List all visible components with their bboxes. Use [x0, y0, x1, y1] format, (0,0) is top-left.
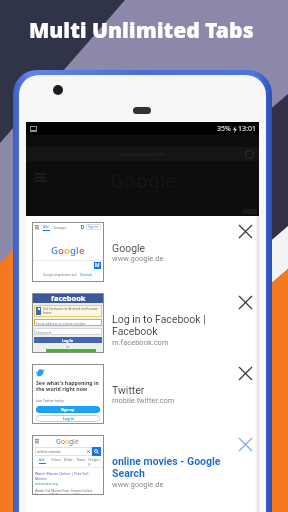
staticText: G [110, 168, 124, 194]
staticText: Sign up [61, 407, 75, 412]
staticText: Google [112, 242, 146, 254]
staticText: online movies - Google Search [112, 455, 221, 480]
button[interactable]: Close tab [232, 360, 258, 386]
button[interactable]: facebook [26, 293, 259, 364]
staticText: o [61, 437, 65, 446]
button[interactable]: Close tab [232, 289, 258, 315]
staticText: o [64, 244, 70, 257]
button[interactable]: G [26, 435, 259, 506]
staticText: Google angeboten auf: [43, 273, 78, 277]
staticText: Images [54, 225, 67, 230]
staticText: mobile.twitter.com [112, 396, 175, 405]
staticText: www.google.de [112, 480, 164, 489]
staticText: g [70, 244, 76, 257]
staticText: M [95, 262, 100, 269]
staticText: 13:01 [238, 124, 256, 134]
staticText: o [65, 437, 69, 446]
staticText: o [124, 168, 136, 194]
staticText: or [66, 344, 70, 349]
staticText: Alle [39, 458, 45, 462]
staticText: Log in [63, 416, 74, 421]
staticText: Multi Unlimited Tabs [29, 16, 254, 45]
button[interactable]: Close tab [232, 218, 258, 244]
staticText: e [79, 244, 85, 257]
staticText: l [73, 437, 75, 446]
staticText: facebook [51, 293, 86, 303]
staticText: Password [36, 330, 51, 334]
staticText: o [58, 244, 64, 257]
staticText: m.facebook.com [112, 338, 169, 347]
staticText: G [56, 437, 61, 446]
staticText: l [76, 244, 79, 257]
staticText: online movies [37, 449, 61, 454]
staticText: g [69, 437, 73, 446]
staticText: www.google.de [121, 150, 165, 158]
staticText: Join Twitter today. [36, 398, 65, 403]
staticText: Email address or phone number [36, 321, 86, 325]
button[interactable]: Alle [26, 222, 259, 293]
staticText: News [77, 458, 86, 462]
staticText: Sign in [88, 225, 99, 229]
staticText: Deutsch [80, 273, 93, 277]
staticText: l [160, 168, 165, 194]
staticText: Log In [62, 338, 74, 343]
staticText: See what's happening in the world right … [36, 379, 99, 393]
staticText: Alle [43, 224, 50, 229]
staticText: Get Facebook for Android and browse fast… [43, 307, 102, 315]
staticText: e [165, 168, 176, 194]
button[interactable]: See what's happening in the world right … [26, 364, 259, 435]
staticText: 35% [217, 124, 231, 134]
staticText: Bilder [64, 458, 73, 462]
staticText: o [136, 168, 148, 194]
staticText: Videos [51, 458, 61, 462]
staticText: G [51, 244, 58, 257]
staticText: e [75, 437, 79, 446]
staticText: g [148, 168, 160, 194]
staticText: Log in to Facebook | Facebook [112, 313, 206, 338]
staticText: www.google.de [112, 254, 164, 263]
staticText: Shopping [88, 458, 101, 466]
staticText: Watch Movies Online | Free Full Movies [35, 471, 101, 481]
staticText: Twitter [112, 384, 145, 396]
button[interactable]: Close tab [232, 431, 258, 457]
staticText: onlinevideo.org [35, 482, 58, 486]
staticText: Watch Full Movies Free. Stream Online Mo… [35, 489, 101, 495]
